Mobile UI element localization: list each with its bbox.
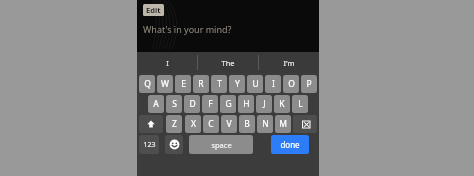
staticText: L [298, 98, 303, 110]
staticText: C [208, 118, 214, 130]
staticText: O [288, 78, 295, 90]
staticText: S [172, 98, 177, 110]
button[interactable]: Edit [143, 4, 164, 16]
button[interactable]: E [175, 75, 191, 93]
staticText: What's in your mind? [143, 23, 232, 35]
button[interactable]: I [137, 52, 197, 73]
button[interactable]: S [166, 95, 182, 113]
button[interactable]: Z [166, 115, 182, 133]
button[interactable]: Backspace [293, 115, 317, 133]
staticText: J [263, 98, 266, 110]
staticText: N [262, 118, 269, 130]
staticText: I [272, 78, 275, 90]
staticText: 123 [143, 140, 156, 150]
button[interactable]: C [203, 115, 219, 133]
button[interactable]: X [185, 115, 201, 133]
staticText: G [225, 98, 232, 110]
button[interactable]: B [239, 115, 255, 133]
staticText: done [280, 139, 300, 150]
button[interactable]: M [275, 115, 291, 133]
button[interactable]: J [256, 95, 272, 113]
button[interactable]: U [247, 75, 263, 93]
button[interactable]: L [292, 95, 308, 113]
button[interactable]: P [301, 75, 317, 93]
staticText: F [208, 98, 213, 110]
button[interactable]: Emoji [165, 135, 183, 154]
button[interactable]: O [283, 75, 299, 93]
staticText: U [252, 78, 259, 90]
button[interactable]: Q [139, 75, 155, 93]
staticText: T [217, 78, 222, 90]
button[interactable]: T [211, 75, 227, 93]
staticText: Q [144, 78, 151, 90]
button[interactable]: space [189, 135, 253, 154]
button[interactable]: 123 [139, 135, 159, 154]
staticText: I'm [283, 58, 295, 68]
staticText: The [221, 58, 235, 68]
button[interactable]: V [221, 115, 237, 133]
staticText: P [306, 78, 312, 90]
staticText: R [198, 78, 204, 90]
button[interactable]: D [184, 95, 200, 113]
staticText: space [211, 140, 232, 150]
staticText: W [161, 78, 169, 90]
staticText: D [189, 98, 196, 110]
button[interactable]: done [271, 135, 309, 154]
button[interactable]: G [220, 95, 236, 113]
staticText: K [279, 98, 285, 110]
button[interactable]: Shift [139, 115, 163, 133]
button[interactable]: N [257, 115, 273, 133]
staticText: B [244, 118, 250, 130]
staticText: Z [172, 118, 177, 130]
staticText: A [153, 98, 159, 110]
staticText: X [191, 118, 196, 130]
button[interactable]: K [274, 95, 290, 113]
button[interactable]: I'm [258, 52, 319, 73]
staticText: I [166, 58, 169, 68]
button[interactable]: W [157, 75, 173, 93]
staticText: E [181, 78, 186, 90]
staticText: M [279, 118, 287, 130]
button[interactable]: I [265, 75, 281, 93]
staticText: H [243, 98, 250, 110]
button[interactable]: Y [229, 75, 245, 93]
staticText: Y [235, 78, 240, 90]
button[interactable]: F [202, 95, 218, 113]
staticText: V [226, 118, 232, 130]
button[interactable]: R [193, 75, 209, 93]
button[interactable]: H [238, 95, 254, 113]
button[interactable]: The [197, 52, 258, 73]
staticText: Edit [146, 5, 161, 15]
button[interactable]: A [148, 95, 164, 113]
